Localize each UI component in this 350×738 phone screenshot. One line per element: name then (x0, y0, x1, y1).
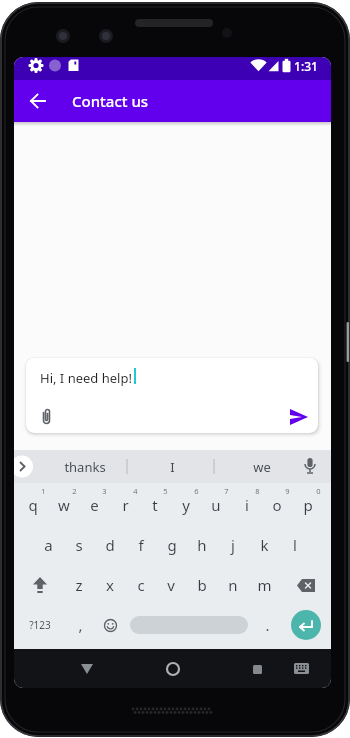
staticText: we (253, 458, 271, 476)
button[interactable]: , (66, 611, 94, 639)
button[interactable]: we (244, 457, 280, 476)
staticText: c (137, 575, 145, 595)
staticText: Hi, I need help! (40, 369, 132, 387)
button[interactable]: b (188, 571, 216, 599)
button[interactable]: f (127, 531, 155, 559)
button[interactable]: . (253, 611, 281, 639)
button[interactable]: r (111, 491, 139, 519)
button[interactable]: a (34, 531, 62, 559)
staticText: . (265, 615, 270, 635)
button[interactable]: thanks (60, 457, 110, 476)
button[interactable]: x (96, 571, 124, 599)
button[interactable]: l (281, 531, 309, 559)
button[interactable]: y (172, 491, 200, 519)
staticText: 6 (194, 486, 199, 496)
button[interactable]: d (96, 531, 124, 559)
button[interactable]: v (157, 571, 185, 599)
staticText: 3 (102, 486, 107, 496)
staticText: o (272, 495, 282, 515)
staticText: r (122, 495, 129, 515)
staticText: x (106, 575, 114, 595)
staticText: 1 (41, 486, 46, 496)
staticText: b (197, 575, 207, 595)
staticText: 4 (133, 486, 138, 496)
button[interactable] (24, 87, 52, 115)
button[interactable] (73, 655, 101, 683)
button[interactable] (130, 616, 248, 634)
staticText: 9 (285, 486, 290, 496)
staticText: I (170, 458, 175, 476)
button[interactable]: h (188, 531, 216, 559)
button[interactable]: i (233, 491, 261, 519)
button[interactable]: m (250, 571, 278, 599)
staticText: Contact us (72, 91, 149, 111)
staticText: 8 (255, 486, 260, 496)
button[interactable]: u (202, 491, 230, 519)
staticText: 1:31 (294, 58, 318, 74)
button[interactable] (291, 610, 321, 640)
staticText: j (231, 535, 235, 555)
button[interactable] (96, 611, 124, 639)
button[interactable]: Hi, I need help! (26, 358, 318, 433)
staticText: 7 (224, 486, 229, 496)
staticText: m (257, 575, 272, 595)
button[interactable]: I (154, 457, 190, 476)
staticText: d (105, 535, 115, 555)
staticText: n (228, 575, 238, 595)
button[interactable]: w (50, 491, 78, 519)
staticText: z (75, 575, 83, 595)
staticText: t (152, 495, 158, 515)
staticText: u (211, 495, 221, 515)
button[interactable]: o (263, 491, 291, 519)
staticText: s (75, 535, 83, 555)
staticText: k (260, 535, 269, 555)
button[interactable]: c (127, 571, 155, 599)
staticText: e (90, 495, 99, 515)
staticText: a (44, 535, 53, 555)
staticText: g (167, 535, 177, 555)
staticText: , (78, 615, 83, 635)
button[interactable]: q (19, 491, 47, 519)
button[interactable] (159, 655, 187, 683)
staticText: y (182, 495, 190, 515)
button[interactable] (287, 655, 315, 683)
button[interactable] (291, 571, 321, 599)
staticText: thanks (64, 458, 106, 476)
button[interactable] (25, 571, 55, 599)
staticText: l (293, 535, 297, 555)
staticText: 2 (72, 486, 77, 496)
staticText: p (303, 495, 313, 515)
button[interactable] (286, 405, 312, 429)
staticText: h (197, 535, 207, 555)
button[interactable] (243, 655, 271, 683)
button[interactable]: s (65, 531, 93, 559)
button[interactable]: e (80, 491, 108, 519)
button[interactable]: g (158, 531, 186, 559)
staticText: 0 (316, 486, 321, 496)
staticText: v (167, 575, 175, 595)
staticText: w (58, 495, 70, 515)
button[interactable]: t (141, 491, 169, 519)
staticText: f (138, 535, 144, 555)
staticText: q (28, 495, 38, 515)
staticText: i (245, 495, 249, 515)
button[interactable]: n (219, 571, 247, 599)
staticText: ?123 (29, 618, 51, 632)
button[interactable]: k (250, 531, 278, 559)
button[interactable]: z (65, 571, 93, 599)
button[interactable]: j (219, 531, 247, 559)
button[interactable]: ?123 (26, 611, 54, 639)
staticText: 5 (163, 486, 168, 496)
button[interactable]: p (294, 491, 322, 519)
